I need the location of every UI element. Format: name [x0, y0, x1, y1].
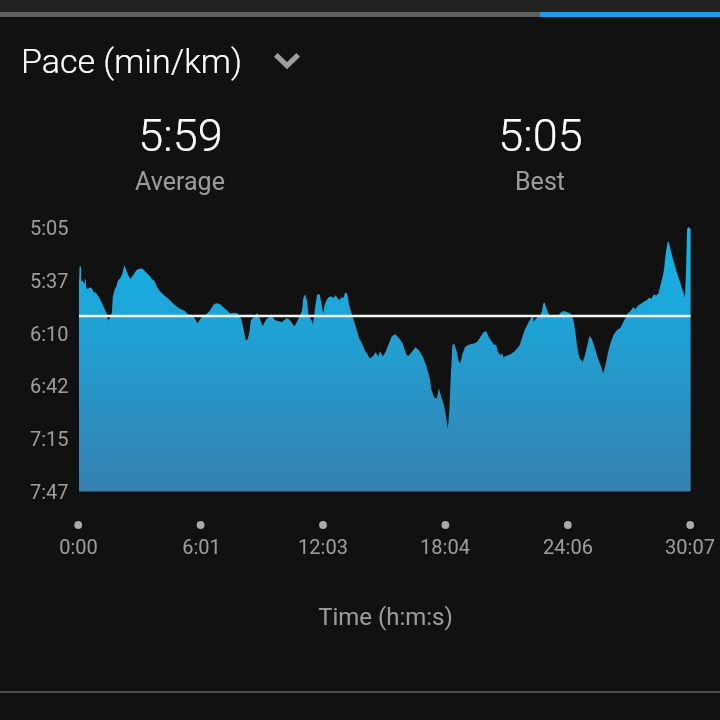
staticText: 6:42	[30, 374, 69, 397]
staticText: 7:15	[30, 427, 69, 450]
button[interactable]: Pace (min/km)	[0, 38, 316, 84]
staticText: 5:05	[498, 109, 583, 162]
other: Pace over time chart	[0, 0, 720, 720]
button[interactable]: Heart rate tab	[360, 0, 540, 17]
staticText: 30:07	[665, 535, 715, 558]
button[interactable]: 5:59	[0, 109, 360, 196]
button[interactable]: Elevation tab	[180, 0, 360, 17]
staticText: 5:05	[30, 216, 69, 239]
staticText: 6:10	[30, 322, 69, 345]
button[interactable]: Pace tab	[540, 0, 720, 17]
staticText: Time (h:m:s)	[318, 603, 453, 631]
staticText: Pace (min/km)	[21, 41, 243, 81]
staticText: 6:01	[182, 535, 221, 558]
staticText: 12:03	[298, 535, 348, 558]
staticText: 18:04	[420, 535, 470, 558]
button[interactable]: 5:05	[360, 109, 720, 196]
staticText: Best	[515, 167, 565, 196]
button[interactable]: Distance tab	[0, 0, 180, 17]
staticText: 5:59	[138, 109, 223, 162]
staticText: Average	[135, 167, 225, 196]
staticText: 24:06	[543, 535, 593, 558]
staticText: 7:47	[30, 480, 69, 503]
other: Change metric	[272, 46, 302, 76]
staticText: 5:37	[30, 269, 69, 292]
staticText: 0:00	[59, 535, 98, 558]
